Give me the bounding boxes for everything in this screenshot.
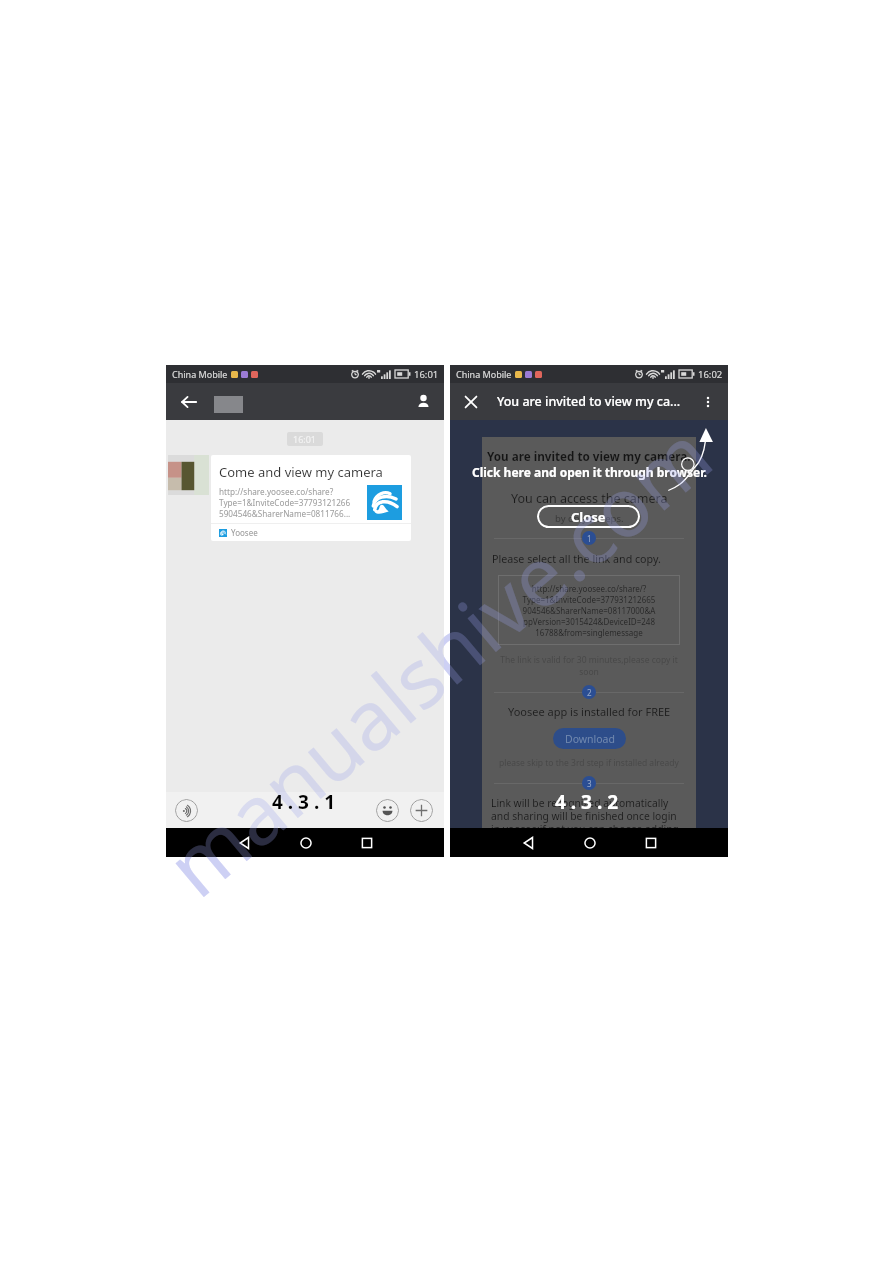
button[interactable]: Back <box>518 832 540 854</box>
staticText: manualshive.com <box>142 398 733 920</box>
staticText: Link will be recognized automatically an… <box>491 796 679 836</box>
button[interactable]: Recent apps <box>356 832 378 854</box>
staticText: You are invited to view my ca... <box>497 393 681 410</box>
button[interactable]: Voice message <box>175 799 198 822</box>
staticText: 2 <box>587 687 592 698</box>
staticText: Come and view my camera <box>219 463 383 481</box>
button[interactable]: Recent apps <box>640 832 662 854</box>
staticText: Download <box>565 732 615 746</box>
staticText: 16:01 <box>293 433 317 445</box>
staticText: 16:01 <box>414 368 439 381</box>
staticText: You can access the camera <box>511 490 668 507</box>
staticText: manualshive.com <box>142 398 733 920</box>
button[interactable]: Emoji <box>376 799 399 822</box>
button[interactable]: Home <box>295 832 317 854</box>
staticText: Yoosee app is installed for FREE <box>508 704 671 719</box>
staticText: http://share.yoosee.co/share? Type=1&Inv… <box>219 486 351 519</box>
button[interactable]: Come and view my camera <box>211 455 411 541</box>
staticText: The link is valid for 30 minutes,please … <box>491 654 687 678</box>
staticText: please skip to the 3rd step if installed… <box>499 757 679 769</box>
staticText: China Mobile <box>456 368 512 380</box>
button[interactable]: More options <box>701 395 715 409</box>
button[interactable]: Close <box>537 505 640 528</box>
staticText: Yoosee <box>231 527 258 538</box>
staticText: You are invited to view my camera. <box>487 448 691 464</box>
staticText: China Mobile <box>172 368 228 380</box>
button[interactable]: Close <box>463 394 479 410</box>
button[interactable]: Download <box>553 728 626 749</box>
staticText: Close <box>571 508 606 526</box>
button[interactable]: Back <box>234 832 256 854</box>
staticText: 4 . 3 . 2 <box>555 789 619 815</box>
staticText: 1 <box>587 533 592 544</box>
staticText: http://share.yoosee.co/share/? Type=1&In… <box>498 583 680 638</box>
button[interactable]: Back <box>180 393 198 411</box>
staticText: 16:02 <box>698 368 723 381</box>
staticText: Click here and open it through browser. <box>472 464 707 480</box>
staticText: 4 . 3 . 1 <box>272 789 336 815</box>
button[interactable]: Contact <box>415 393 432 410</box>
button[interactable]: Add attachment <box>410 799 433 822</box>
staticText: 3 <box>587 778 592 789</box>
staticText: by only 3 steps. <box>555 512 624 525</box>
button[interactable]: Home <box>579 832 601 854</box>
staticText: Please select all the link and copy. <box>492 552 661 567</box>
